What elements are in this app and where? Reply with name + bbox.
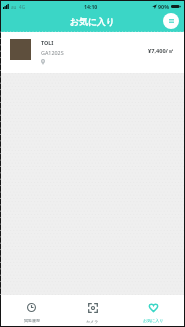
button[interactable]: 閲覧履歴 bbox=[1, 295, 62, 326]
button[interactable]: お気に入り bbox=[123, 295, 184, 326]
staticText: お気に入り bbox=[143, 318, 164, 323]
staticText: 14:10 bbox=[84, 3, 98, 10]
staticText: 閲覧履歴 bbox=[24, 318, 40, 323]
button[interactable]: Menu bbox=[163, 13, 179, 29]
staticText: GA1202S bbox=[41, 49, 64, 56]
staticText: 4G bbox=[19, 4, 25, 10]
staticText: お気に入り bbox=[70, 17, 115, 28]
button[interactable]: カメラ bbox=[62, 295, 123, 326]
button[interactable]: TOLI bbox=[1, 32, 184, 73]
staticText: au bbox=[11, 4, 17, 10]
staticText: ¥7,400/㎡ bbox=[148, 47, 174, 55]
staticText: カメラ bbox=[86, 319, 99, 324]
staticText: 90% bbox=[158, 3, 170, 10]
staticText: TOLI bbox=[41, 39, 54, 46]
